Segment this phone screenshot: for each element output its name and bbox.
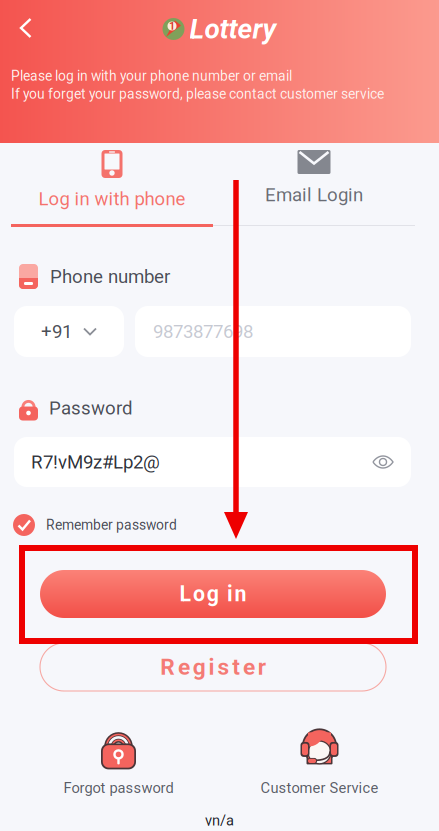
staticText: Email Login	[265, 184, 363, 206]
staticText: Register	[160, 654, 266, 680]
button[interactable]: 9873877698	[135, 306, 411, 357]
staticText: vn/a	[205, 812, 234, 829]
staticText: Lottery	[189, 13, 276, 45]
staticText: Log in with phone	[38, 188, 185, 210]
button[interactable]: Email Login	[213, 150, 415, 224]
button[interactable]: Back	[4, 6, 48, 50]
button[interactable]: Remember password	[13, 513, 177, 537]
button[interactable]: Log in	[40, 570, 386, 618]
button[interactable]: +91	[14, 306, 124, 357]
button[interactable]: R7!vM9z#Lp2@	[14, 437, 411, 487]
staticText: Phone number	[50, 266, 170, 287]
button[interactable]: Log in with phone	[11, 150, 213, 224]
staticText: Forgot password	[63, 779, 173, 797]
staticText: Log in	[179, 581, 246, 606]
staticText: 9873877698	[153, 321, 253, 342]
button[interactable]: Customer Service	[219, 726, 420, 798]
staticText: Password	[49, 397, 133, 419]
staticText: Please log in with your phone number or …	[11, 68, 292, 84]
staticText: +91	[41, 321, 72, 342]
button[interactable]: Register	[40, 643, 386, 691]
staticText: 1	[169, 20, 175, 32]
staticText: R7!vM9z#Lp2@	[31, 451, 160, 473]
staticText: If you forget your password, please cont…	[11, 86, 384, 102]
staticText: Remember password	[46, 517, 177, 533]
staticText: Customer Service	[260, 779, 378, 797]
button[interactable]: Forgot password	[18, 726, 219, 798]
